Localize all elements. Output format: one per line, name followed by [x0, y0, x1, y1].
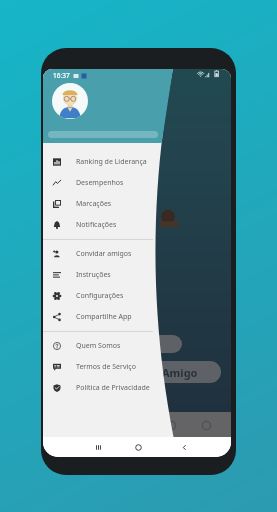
button[interactable]: Termos de Serviço	[43, 356, 158, 377]
button[interactable]: Início	[128, 437, 148, 457]
staticText: Política de Privacidade	[76, 383, 150, 393]
button[interactable]: Voltar	[174, 437, 194, 457]
staticText: Compartilhe App	[76, 312, 132, 322]
staticText: Convidar amigos	[76, 249, 132, 259]
button[interactable]: Marcações	[43, 193, 158, 214]
button[interactable]: Aba 4	[162, 416, 180, 434]
button[interactable]: Instruções	[43, 264, 158, 285]
button[interactable]: Foto do perfil	[52, 83, 88, 119]
staticText: Termos de Serviço	[76, 362, 136, 372]
button[interactable]: Amigo	[119, 361, 221, 383]
button[interactable]: Notificações	[43, 214, 158, 235]
button[interactable]: Desempenhos	[43, 172, 158, 193]
button[interactable]: Configurações	[43, 285, 158, 306]
staticText: Instruções	[76, 270, 111, 280]
button[interactable]: Compartilhe App	[43, 306, 158, 327]
staticText: Desempenhos	[76, 178, 124, 188]
staticText: Quem Somos	[76, 341, 121, 351]
button[interactable]	[133, 335, 182, 353]
staticText: Notificações	[76, 220, 117, 230]
button[interactable]: Quem Somos	[43, 335, 158, 356]
staticText: Configurações	[76, 291, 124, 301]
button[interactable]: Aba 5	[197, 416, 215, 434]
staticText: Ranking de Liderança	[76, 157, 147, 167]
button[interactable]: Recentes	[88, 437, 108, 457]
button[interactable]: Política de Privacidade	[43, 377, 158, 398]
staticText: Marcações	[76, 199, 112, 209]
button[interactable]: Ranking de Liderança	[43, 151, 158, 172]
staticText: 16:37	[53, 71, 70, 80]
staticText: Amigo	[162, 365, 198, 380]
button[interactable]: Convidar amigos	[43, 243, 158, 264]
